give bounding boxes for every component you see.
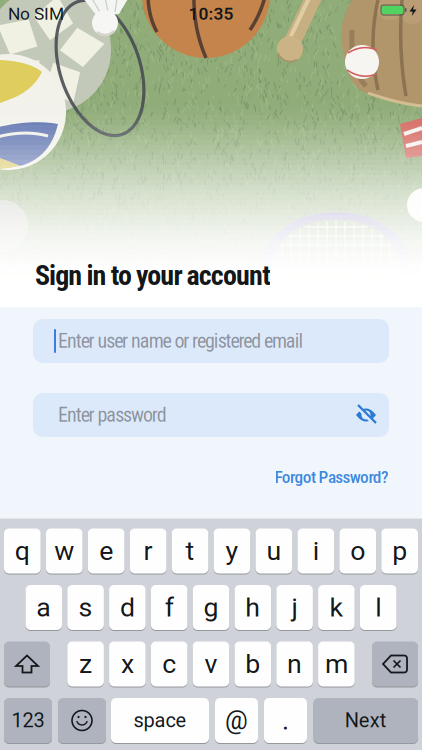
button[interactable]: Enter user name or registered email [33,319,389,363]
staticText: q [15,536,30,566]
button[interactable]: Emoji [58,698,106,743]
button[interactable]: b [234,641,271,686]
button[interactable]: s [67,585,104,630]
button[interactable]: l [360,585,396,630]
staticText: j [292,592,298,623]
button[interactable]: Shift [4,641,50,686]
button[interactable]: @ [215,698,258,743]
button[interactable]: Enter password [33,393,389,437]
staticText: Next [345,709,387,732]
staticText: b [245,649,260,679]
button[interactable]: m [318,641,355,686]
button[interactable]: k [318,585,355,630]
staticText: z [79,649,92,679]
staticText: f [165,592,174,623]
button[interactable]: t [172,528,208,573]
button[interactable]: f [151,585,187,630]
staticText: g [203,592,218,623]
button[interactable]: c [151,641,187,686]
staticText: d [120,592,135,623]
staticText: y [225,536,238,566]
button[interactable]: y [214,528,250,573]
button[interactable]: w [46,528,83,573]
button[interactable]: e [88,528,124,573]
staticText: l [375,592,381,623]
staticText: No SIM [8,4,64,24]
staticText: s [79,592,93,623]
button[interactable]: n [276,641,313,686]
staticText: r [144,536,153,566]
button[interactable]: r [130,528,166,573]
staticText: Enter user name or registered email [58,329,304,353]
staticText: t [185,536,194,566]
staticText: w [54,536,74,566]
staticText: o [350,536,365,566]
staticText: 10:35 [188,4,233,24]
button[interactable]: x [109,641,146,686]
staticText: k [329,592,343,623]
button[interactable]: v [193,641,229,686]
staticText: v [204,649,217,679]
button[interactable]: p [381,528,418,573]
button[interactable]: . [264,698,307,743]
staticText: i [313,536,319,566]
staticText: x [121,649,134,679]
button[interactable]: d [109,585,146,630]
button[interactable]: i [297,528,334,573]
staticText: @ [225,706,248,735]
button[interactable]: 123 [4,698,52,743]
staticText: Sign in to your account [35,259,271,292]
button[interactable]: z [67,641,104,686]
staticText: a [36,592,51,623]
button[interactable]: h [234,585,271,630]
button[interactable]: Delete [372,641,418,686]
button[interactable]: Forgot Password? [274,467,389,487]
button[interactable]: Next [313,698,418,743]
staticText: 123 [11,709,44,732]
button[interactable]: a [25,585,62,630]
staticText: c [162,649,176,679]
staticText: m [325,649,348,679]
staticText: Enter password [58,403,167,427]
staticText: space [133,709,186,732]
staticText: . [282,705,289,736]
button[interactable]: u [255,528,292,573]
staticText: e [99,536,113,566]
button[interactable]: o [339,528,376,573]
staticText: u [266,536,281,566]
button[interactable]: j [276,585,313,630]
button[interactable]: space [111,698,209,743]
staticText: h [245,592,260,623]
staticText: Forgot Password? [274,467,389,487]
button[interactable]: g [193,585,229,630]
button[interactable]: q [4,528,41,573]
button[interactable]: Show password [355,406,377,424]
staticText: p [392,536,407,566]
staticText: n [287,649,302,679]
